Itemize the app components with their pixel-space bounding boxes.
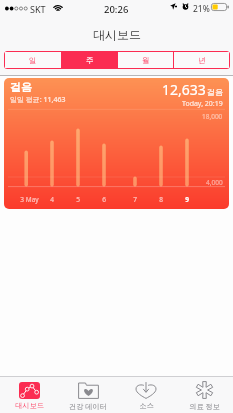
staticText: 일 — [29, 56, 37, 65]
staticText: 8 — [159, 195, 163, 204]
staticText: 주 — [86, 56, 94, 65]
staticText: 5 — [76, 195, 80, 204]
staticText: 21% — [193, 3, 210, 15]
staticText: 의료 정보 — [189, 401, 220, 411]
button[interactable]: 년 — [174, 52, 229, 68]
staticText: 년 — [198, 56, 206, 65]
button[interactable]: Medical ID — [175, 377, 233, 413]
other: Sources — [136, 381, 156, 399]
staticText: 일일 평균: 11,463 — [10, 95, 66, 105]
staticText: SKT — [30, 3, 46, 15]
button[interactable]: Sources — [117, 377, 175, 413]
staticText: 건강 데이터 — [69, 401, 107, 411]
other: Medical ID — [196, 381, 213, 399]
staticText: 12,633 — [162, 80, 206, 99]
staticText: 7 — [133, 195, 137, 204]
staticText: 대시보드 — [93, 27, 141, 42]
staticText: 4,000 — [206, 178, 223, 187]
button[interactable]: 일 — [5, 52, 61, 68]
staticText: 4 — [50, 195, 54, 204]
staticText: 6 — [102, 195, 106, 204]
staticText: 걸음 — [207, 87, 223, 97]
staticText: 월 — [142, 56, 150, 65]
button[interactable]: 주 — [62, 52, 117, 68]
button[interactable]: 월 — [118, 52, 173, 68]
button[interactable]: 걸음 — [4, 78, 229, 209]
staticText: 걸음 — [10, 80, 32, 94]
other: Dashboard — [19, 382, 40, 399]
staticText: 소스 — [139, 401, 154, 410]
staticText: 9 — [185, 195, 189, 204]
staticText: 20:26 — [104, 3, 129, 16]
staticText: Today, 20:19 — [182, 99, 223, 109]
staticText: 18,000 — [202, 112, 223, 121]
button[interactable]: Health Data — [59, 377, 117, 413]
button[interactable]: Dashboard — [0, 377, 59, 413]
other: Health Data — [78, 382, 99, 399]
staticText: 대시보드 — [15, 401, 44, 410]
staticText: 3 May — [20, 195, 39, 204]
